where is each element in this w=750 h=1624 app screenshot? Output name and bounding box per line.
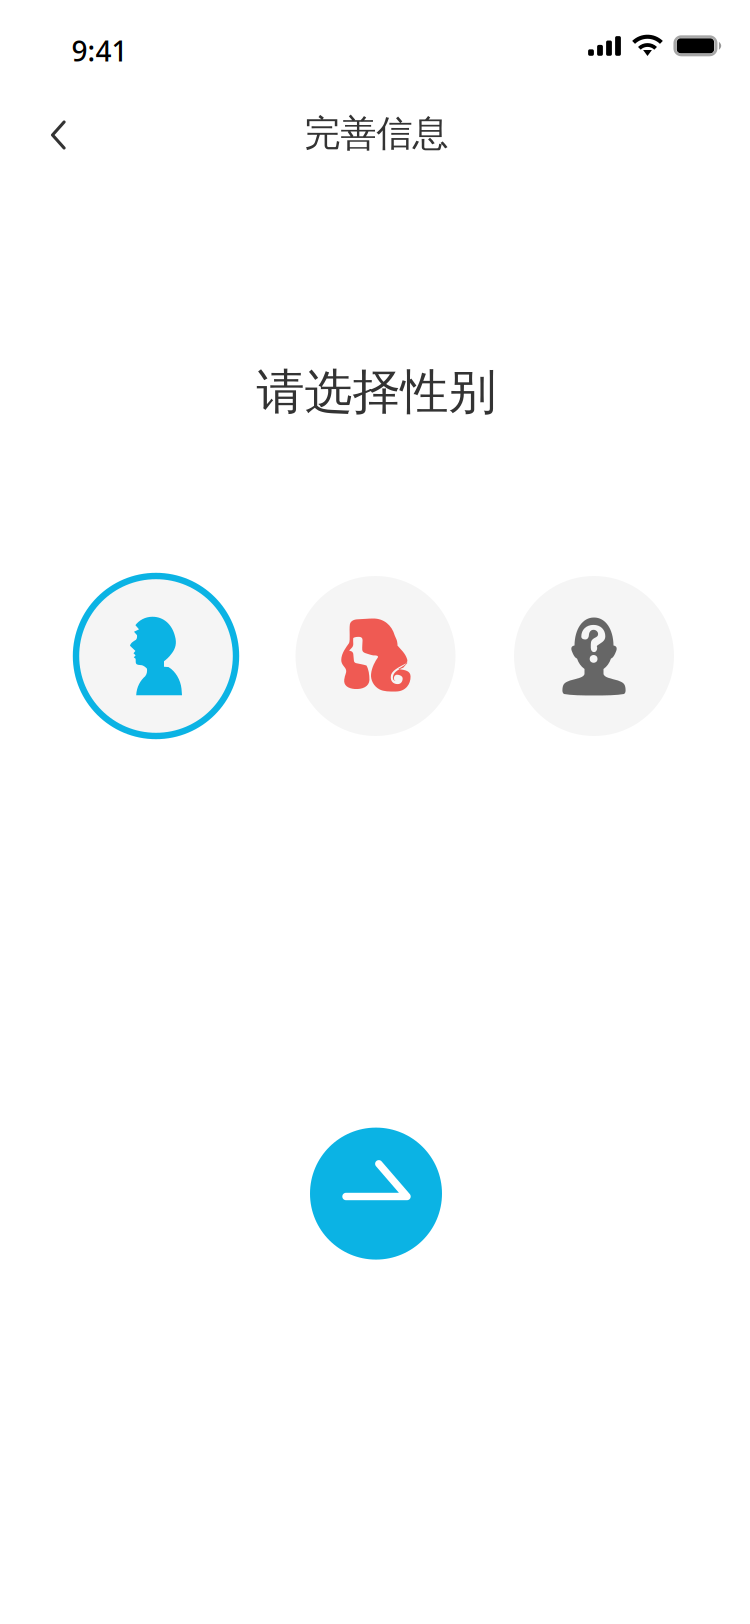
button[interactable]: Unspecified <box>509 571 679 741</box>
staticText: 请选择性别 <box>256 362 496 421</box>
button[interactable]: Next <box>310 1128 442 1260</box>
button[interactable]: Female <box>290 571 460 741</box>
button[interactable]: Back <box>27 104 89 166</box>
staticText: 9:41 <box>71 32 127 69</box>
staticText: 完善信息 <box>304 111 448 156</box>
button[interactable]: Male <box>71 571 241 741</box>
